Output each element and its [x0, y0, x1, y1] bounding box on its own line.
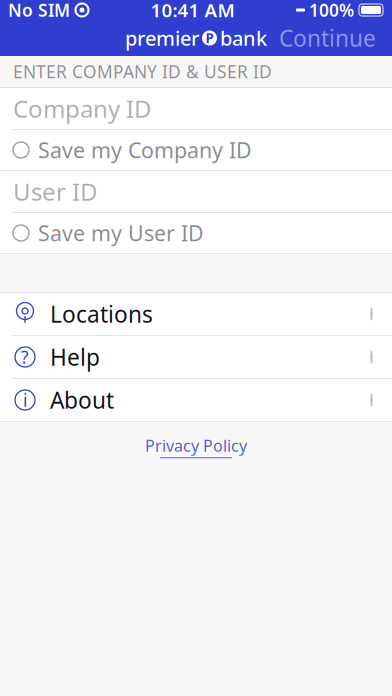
staticText: ENTER COMPANY ID & USER ID [13, 60, 272, 83]
button[interactable]: Save my User ID [0, 213, 392, 253]
staticText: Company ID [13, 93, 152, 124]
staticText: ? [21, 345, 29, 368]
staticText: Save my Company ID [38, 136, 252, 164]
staticText: Privacy Policy [145, 435, 247, 456]
staticText: User ID [13, 176, 98, 207]
staticText: No SIM [8, 0, 70, 21]
staticText: i [23, 388, 27, 411]
button[interactable]: Privacy Policy [131, 422, 261, 464]
staticText: Save my User ID [38, 219, 204, 247]
button[interactable]: ? [0, 336, 392, 378]
button[interactable]: Continue [269, 16, 386, 60]
staticText: 10:41 AM [150, 0, 234, 22]
staticText: Continue [279, 23, 376, 53]
button[interactable]: Locations [0, 293, 392, 335]
staticText: 100% [309, 0, 354, 21]
staticText: premier [125, 25, 199, 51]
button[interactable]: i [0, 379, 392, 421]
button[interactable]: Company ID [0, 88, 392, 129]
staticText: Locations [50, 299, 153, 329]
staticText: bank [220, 25, 267, 51]
staticText: About [50, 385, 114, 415]
staticText: Help [50, 342, 100, 372]
staticText: P [205, 29, 213, 47]
button[interactable]: Save my Company ID [0, 130, 392, 170]
button[interactable]: User ID [0, 171, 392, 212]
